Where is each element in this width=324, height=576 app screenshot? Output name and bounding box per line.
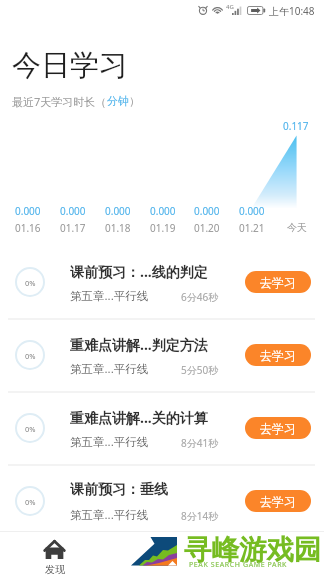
- staticText: 0%: [25, 497, 36, 507]
- button[interactable]: 0%: [0, 464, 324, 537]
- button[interactable]: 0%: [0, 245, 324, 318]
- button[interactable]: 0%: [0, 391, 324, 464]
- button[interactable]: 去学习: [245, 344, 311, 366]
- button[interactable]: 去学习: [245, 271, 311, 293]
- staticText: 发现: [45, 563, 65, 576]
- staticText: 去学习: [260, 275, 296, 290]
- staticText: 0.000: [150, 204, 176, 218]
- staticText: 课前预习：垂线: [70, 481, 220, 499]
- staticText: 01.20: [194, 221, 220, 235]
- staticText: 重难点讲解...关的计算: [70, 408, 220, 427]
- staticText: 0%: [25, 424, 36, 434]
- staticText: 今天: [287, 221, 307, 234]
- staticText: 分钟: [107, 94, 129, 108]
- staticText: 01.19: [150, 221, 176, 235]
- staticText: 重难点讲解...判定方法: [70, 335, 220, 354]
- button[interactable]: 0%: [0, 318, 324, 391]
- staticText: 第五章...平行线: [70, 507, 149, 523]
- staticText: 8分41秒: [181, 436, 219, 450]
- staticText: 4G: [226, 3, 234, 11]
- staticText: 寻峰游戏园: [184, 533, 322, 568]
- staticText: PEAK SEARCH GAME PARK: [189, 560, 288, 570]
- staticText: 0%: [25, 351, 36, 361]
- staticText: 第五章...平行线: [70, 361, 149, 377]
- staticText: 0.000: [194, 204, 220, 218]
- staticText: 01.21: [239, 221, 265, 235]
- staticText: 0.117: [283, 119, 309, 133]
- staticText: 5分50秒: [181, 363, 219, 377]
- staticText: 01.17: [60, 221, 86, 235]
- staticText: 0.000: [239, 204, 265, 218]
- staticText: 去学习: [260, 421, 296, 436]
- staticText: 0.000: [60, 204, 86, 218]
- staticText: 8分14秒: [181, 509, 219, 523]
- button[interactable]: 去学习: [245, 490, 311, 512]
- staticText: 0%: [25, 278, 36, 288]
- other: 发现: [43, 540, 66, 559]
- staticText: 0.000: [105, 204, 131, 218]
- button[interactable]: 发现: [36, 532, 73, 576]
- staticText: 课前预习：...线的判定: [70, 262, 220, 281]
- staticText: 今日学习: [12, 47, 128, 84]
- staticText: 0.000: [15, 204, 41, 218]
- staticText: 上午10:48: [269, 4, 315, 18]
- staticText: 01.16: [15, 221, 41, 235]
- staticText: 去学习: [260, 494, 296, 509]
- staticText: 第五章...平行线: [70, 434, 149, 450]
- button[interactable]: 去学习: [245, 417, 311, 439]
- staticText: 去学习: [260, 348, 296, 363]
- staticText: 6分46秒: [181, 290, 219, 304]
- staticText: 第五章...平行线: [70, 288, 149, 304]
- staticText: 01.18: [105, 221, 131, 235]
- staticText: ）: [129, 94, 140, 108]
- staticText: 最近7天学习时长（: [12, 94, 107, 109]
